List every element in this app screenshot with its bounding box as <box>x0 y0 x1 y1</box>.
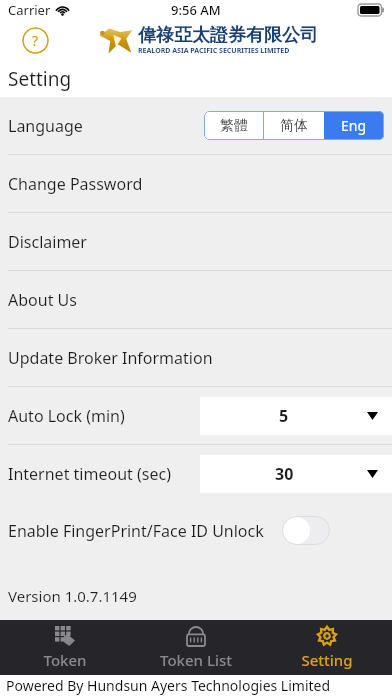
button[interactable]: Setting <box>261 620 392 675</box>
staticText: Internet timeout (sec) <box>8 463 171 485</box>
button[interactable]: 30 <box>200 455 392 493</box>
button[interactable]: 5 <box>200 397 392 435</box>
staticText: Setting <box>301 650 353 670</box>
button[interactable]: Token Registration <box>0 620 130 675</box>
staticText: 繁體 <box>220 117 248 135</box>
staticText: Setting <box>8 66 72 92</box>
staticText: 简体 <box>280 117 308 135</box>
staticText: 30 <box>275 463 294 485</box>
staticText: Change Password <box>8 173 143 195</box>
staticText: Powered By Hundsun Ayers Technologies Li… <box>6 676 331 695</box>
button[interactable]: About Us <box>0 271 392 328</box>
staticText: Disclaimer <box>8 231 87 253</box>
button[interactable]: Help <box>22 27 49 54</box>
staticText: About Us <box>8 289 77 311</box>
staticText: Eng <box>341 116 367 135</box>
staticText: Carrier <box>8 1 51 19</box>
staticText: Version 1.0.7.1149 <box>8 586 137 606</box>
button[interactable]: Enable FingerPrint/Face ID Unlock <box>8 502 384 559</box>
staticText: Update Broker Information <box>8 347 213 369</box>
staticText: Enable FingerPrint/Face ID Unlock <box>8 520 264 542</box>
button[interactable]: 繁體 <box>204 111 263 140</box>
staticText: Auto Lock (min) <box>8 405 125 427</box>
button[interactable]: 简体 <box>264 111 324 140</box>
staticText: REALORD ASIA PACIFIC SECURITIES LIMITED <box>138 46 290 56</box>
button[interactable]: Disclaimer <box>0 213 392 270</box>
staticText: 9:56 AM <box>171 1 221 19</box>
button[interactable]: Change Password <box>0 155 392 212</box>
button[interactable]: Token List <box>130 620 261 675</box>
staticText: 偉祿亞太證券有限公司 <box>138 24 318 47</box>
staticText: Token Registration <box>0 650 130 675</box>
button[interactable]: Update Broker Information <box>0 329 392 386</box>
staticText: Language <box>8 115 83 137</box>
button[interactable]: Eng <box>324 111 384 140</box>
staticText: 5 <box>279 405 289 427</box>
staticText: ? <box>32 31 39 50</box>
staticText: Token List <box>160 650 232 670</box>
